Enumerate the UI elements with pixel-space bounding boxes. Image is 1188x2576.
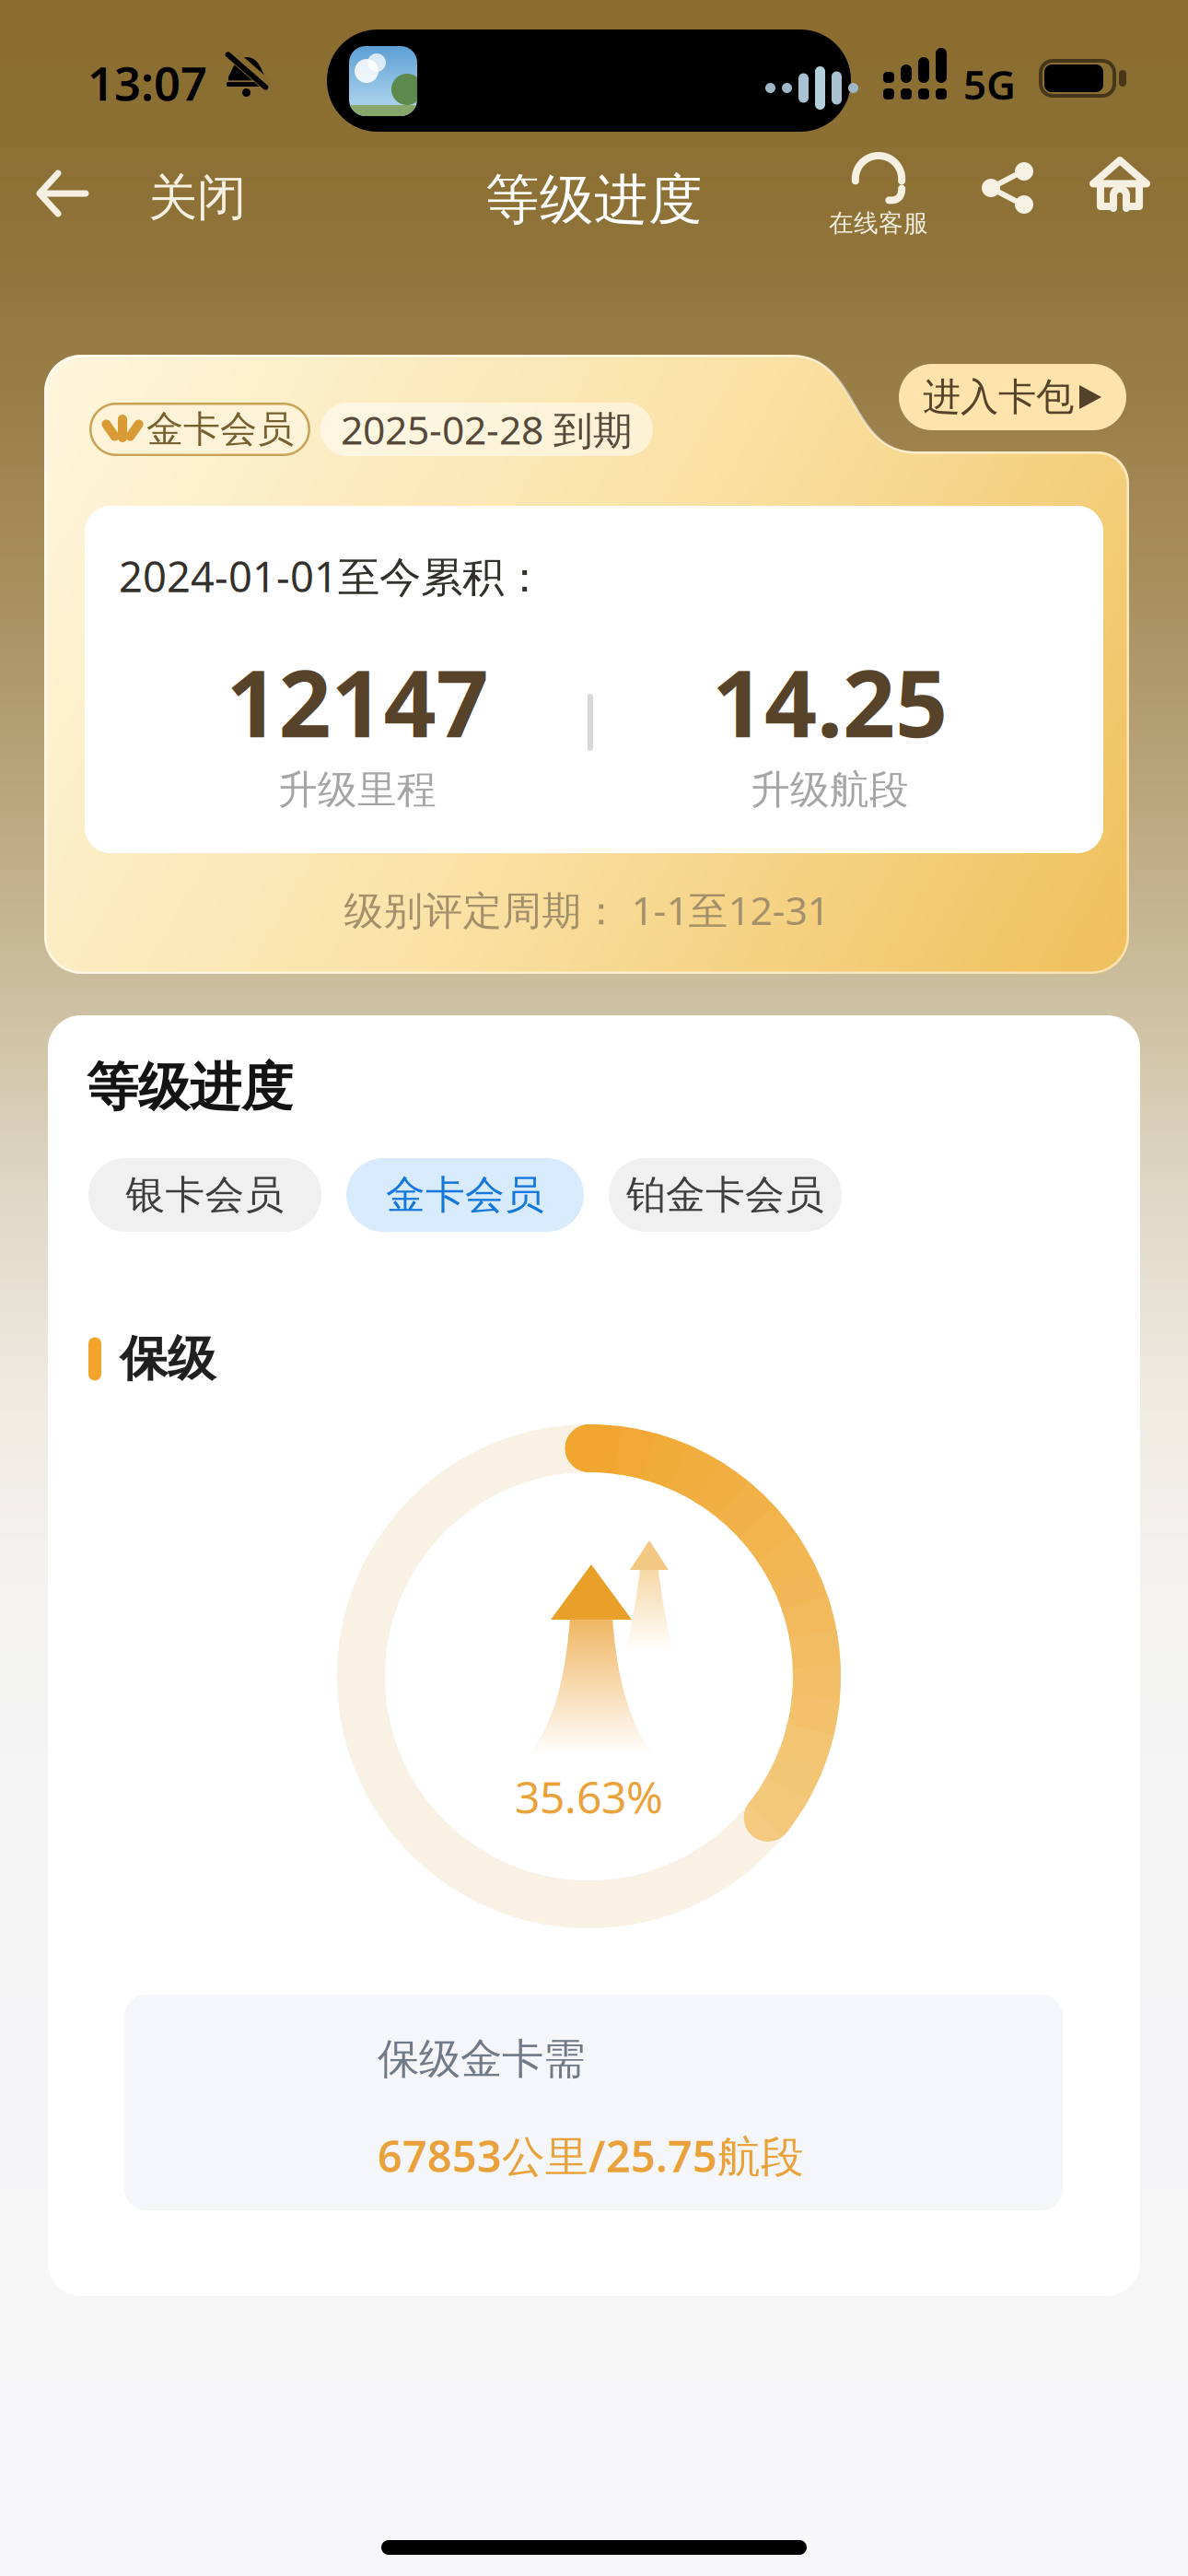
staticText: 在线客服 [829, 208, 928, 238]
staticText: 金卡会员 [386, 1171, 544, 1219]
staticText: 金卡会员 [146, 407, 294, 452]
button[interactable]: 金卡会员 [346, 1158, 584, 1232]
staticText: 等级进度 [485, 167, 703, 233]
staticText: 35.63% [515, 1767, 663, 1826]
button[interactable]: 铂金卡会员 [609, 1158, 842, 1232]
staticText: 关闭 [148, 168, 246, 228]
staticText: 67853公里/25.75航段 [378, 2127, 804, 2184]
staticText: 铂金卡会员 [626, 1171, 824, 1219]
staticText: 14.25 [712, 640, 948, 763]
button[interactable]: Back [21, 159, 102, 228]
button[interactable]: 金卡会员 [89, 403, 310, 456]
staticText: 升级航段 [751, 766, 909, 814]
staticText: 13:07 [87, 52, 207, 114]
staticText: 进入卡包 [923, 374, 1074, 420]
staticText: 12147 [226, 640, 489, 763]
staticText: 保级金卡需 [378, 2033, 585, 2085]
staticText: 银卡会员 [126, 1171, 284, 1219]
staticText: 级别评定周期： 1-1至12-31 [344, 884, 829, 936]
staticText: 保级 [120, 1329, 215, 1388]
staticText: 2025-02-28 到期 [341, 403, 633, 455]
staticText: 5G [963, 57, 1016, 111]
staticText: 升级里程 [278, 766, 437, 814]
staticText: 等级进度 [87, 1056, 293, 1119]
button[interactable]: Home [1086, 153, 1154, 217]
button[interactable]: 银卡会员 [88, 1158, 321, 1232]
staticText: 2024-01-01至今累积： [119, 548, 545, 604]
button[interactable]: Share [974, 155, 1041, 221]
button[interactable]: 关闭 [139, 168, 255, 228]
button[interactable]: 在线客服 [829, 151, 928, 238]
button[interactable]: 进入卡包 [899, 364, 1126, 430]
